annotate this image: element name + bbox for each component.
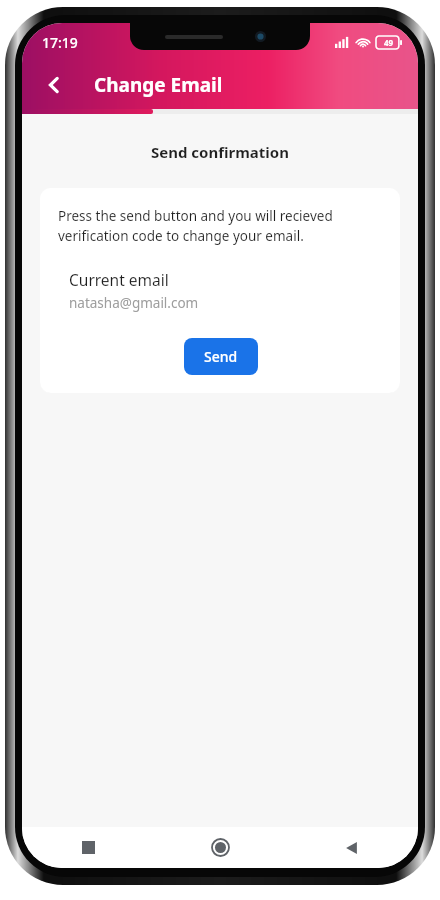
- staticText: natasha@gmail.com: [69, 294, 199, 312]
- button[interactable]: Recents: [22, 827, 154, 868]
- button[interactable]: Back: [34, 65, 74, 105]
- staticText: Change Email: [94, 72, 223, 98]
- staticText: Press the send button and you will recie…: [58, 207, 333, 245]
- staticText: Current email: [69, 269, 169, 290]
- staticText: 17:19: [42, 33, 78, 52]
- button[interactable]: Back: [286, 827, 418, 868]
- button[interactable]: Send: [184, 338, 258, 375]
- staticText: Send: [204, 347, 238, 366]
- staticText: 49: [384, 37, 394, 48]
- staticText: Send confirmation: [151, 142, 289, 162]
- button[interactable]: Home: [154, 827, 286, 868]
